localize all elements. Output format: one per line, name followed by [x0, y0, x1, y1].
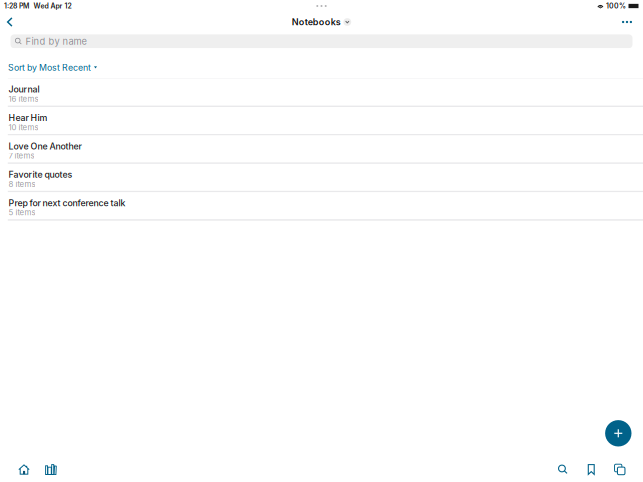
staticText: 16 items — [8, 94, 38, 104]
button[interactable]: Notebooks — [292, 16, 351, 27]
staticText: 100% — [606, 2, 626, 10]
button[interactable]: Bookmarks — [577, 457, 605, 481]
staticText: 8 items — [8, 179, 35, 189]
staticText: Notebooks — [292, 16, 341, 27]
staticText: 10 items — [8, 122, 38, 132]
staticText: 7 items — [8, 151, 34, 160]
button[interactable]: Hear Him — [0, 107, 643, 135]
button[interactable]: Love One Another — [0, 135, 643, 164]
staticText: 5 items — [8, 208, 35, 217]
staticText: Love One Another — [8, 141, 81, 151]
button[interactable]: Prep for next conference talk — [0, 192, 643, 221]
button[interactable]: Notebooks — [605, 457, 634, 481]
button[interactable]: Journal — [0, 79, 643, 107]
button[interactable]: Home — [10, 457, 37, 481]
button[interactable]: More — [616, 13, 638, 31]
staticText: Find by name — [25, 36, 86, 47]
staticText: 1:28 PM — [4, 2, 29, 10]
staticText: Hear Him — [8, 112, 47, 123]
staticText: Favorite quotes — [8, 169, 72, 180]
button[interactable]: Sort by Most Recent — [0, 47, 97, 78]
button[interactable]: Search — [548, 457, 577, 481]
button[interactable]: Favorite quotes — [0, 164, 643, 192]
staticText: Prep for next conference talk — [8, 198, 125, 208]
staticText: Wed Apr 12 — [33, 2, 71, 10]
staticText: Sort by Most Recent — [8, 62, 91, 73]
button[interactable]: Find by name — [10, 34, 632, 48]
staticText: Journal — [8, 84, 39, 95]
button[interactable]: Library — [37, 457, 64, 481]
button[interactable]: Back — [1, 13, 18, 31]
button[interactable]: New notebook — [605, 420, 631, 446]
